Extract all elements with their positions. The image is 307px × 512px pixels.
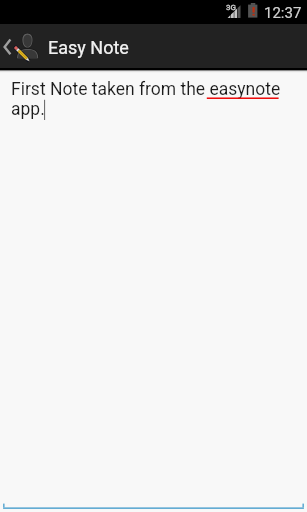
button[interactable]: Navigate up <box>0 24 46 68</box>
staticText: 3G <box>226 3 236 12</box>
staticText: First Note taken from the easynote app. <box>11 79 304 119</box>
staticText: Easy Note <box>48 37 129 58</box>
button[interactable]: First Note taken from the easynote app. <box>0 68 307 512</box>
staticText: 12:37 <box>264 4 302 22</box>
